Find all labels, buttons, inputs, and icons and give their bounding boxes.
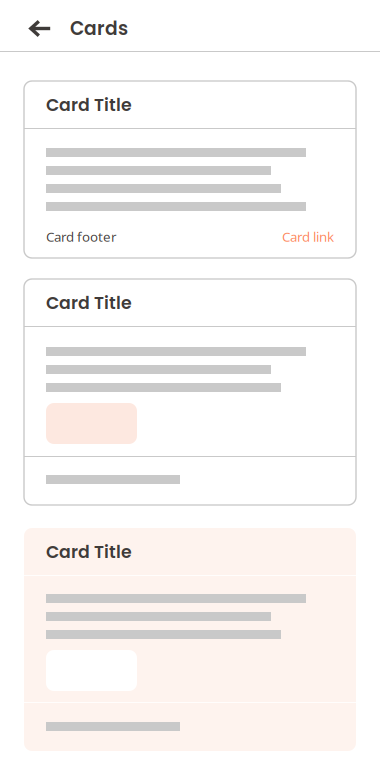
staticText: Card link <box>282 228 334 245</box>
staticText: Cards <box>70 15 128 41</box>
staticText: Card Title <box>46 93 132 117</box>
button[interactable]: Card link <box>282 228 334 245</box>
staticText: Card Title <box>46 540 132 564</box>
staticText: Card footer <box>46 228 117 245</box>
staticText: Card Title <box>46 291 132 315</box>
button[interactable] <box>46 403 137 444</box>
button[interactable]: Back <box>19 6 61 50</box>
